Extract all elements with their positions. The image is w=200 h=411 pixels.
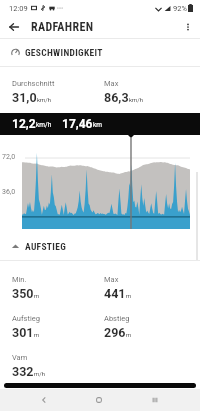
staticText: Min. bbox=[12, 275, 27, 284]
staticText: 36,0 bbox=[2, 188, 16, 196]
button[interactable]: Mehr Optionen bbox=[176, 16, 200, 38]
staticText: Max bbox=[104, 79, 119, 88]
staticText: km/h bbox=[36, 121, 52, 129]
staticText: 17,46 bbox=[62, 117, 93, 131]
staticText: Max bbox=[104, 275, 119, 284]
button[interactable]: Zurück bbox=[0, 16, 28, 38]
staticText: 301 bbox=[12, 325, 34, 340]
staticText: Abstieg bbox=[104, 314, 130, 323]
staticText: 92% bbox=[173, 4, 187, 13]
staticText: m/h bbox=[34, 370, 46, 377]
button[interactable]: Startbildschirm bbox=[77, 389, 121, 411]
staticText: 12,2 bbox=[12, 117, 36, 131]
staticText: km bbox=[93, 121, 102, 129]
staticText: RADFAHREN bbox=[31, 20, 94, 34]
staticText: 332 bbox=[12, 364, 34, 379]
staticText: m bbox=[126, 292, 132, 299]
staticText: 296 bbox=[104, 325, 126, 340]
staticText: AUFSTIEG bbox=[25, 241, 67, 252]
staticText: 31,0 bbox=[12, 90, 37, 105]
staticText: Vam bbox=[12, 353, 28, 362]
staticText: m bbox=[34, 331, 40, 338]
staticText: Aufstieg bbox=[12, 314, 40, 323]
staticText: m bbox=[126, 331, 132, 338]
button[interactable]: Letzte Apps bbox=[133, 389, 177, 411]
staticText: 441 bbox=[104, 286, 126, 301]
button[interactable]: Zurück bbox=[22, 389, 66, 411]
staticText: 72,0 bbox=[2, 153, 16, 161]
staticText: 86,3 bbox=[104, 90, 129, 105]
staticText: 350 bbox=[12, 286, 34, 301]
staticText: m bbox=[34, 292, 40, 299]
staticText: km/h bbox=[129, 96, 144, 103]
staticText: km/h bbox=[37, 96, 52, 103]
staticText: Durchschnitt bbox=[12, 79, 55, 88]
staticText: 12:09 bbox=[9, 4, 28, 13]
staticText: GESCHWINDIGKEIT bbox=[25, 47, 103, 58]
